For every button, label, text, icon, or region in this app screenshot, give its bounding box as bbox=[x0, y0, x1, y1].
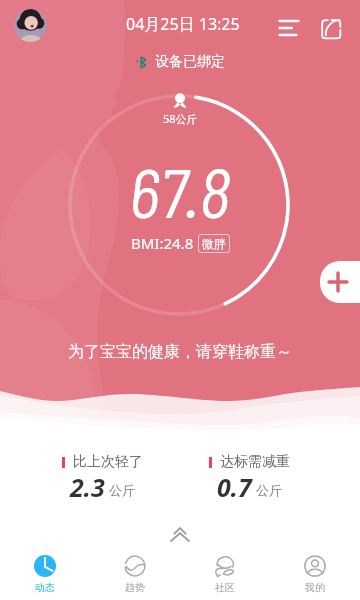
button[interactable]: Menu bbox=[275, 14, 303, 42]
staticText: 2.3 bbox=[70, 470, 105, 504]
staticText: BMI:24.8 bbox=[131, 233, 194, 253]
button[interactable]: Add weight record bbox=[320, 261, 360, 303]
button[interactable]: Expand bbox=[166, 522, 194, 550]
staticText: 设备已绑定 bbox=[155, 53, 225, 71]
staticText: 社区 bbox=[215, 581, 235, 594]
staticText: 0.7 bbox=[217, 470, 252, 504]
staticText: 04月25日 13:25 bbox=[126, 13, 240, 35]
button[interactable]: 社区 bbox=[180, 548, 270, 600]
button[interactable]: 达标需减重 bbox=[209, 453, 290, 505]
staticText: 达标需减重 bbox=[220, 453, 290, 471]
staticText: 比上次轻了 bbox=[73, 453, 143, 471]
staticText: 动态 bbox=[35, 581, 55, 594]
staticText: 67.8 bbox=[129, 150, 231, 232]
button[interactable]: 趋势 bbox=[90, 548, 180, 600]
button[interactable]: Profile bbox=[14, 9, 47, 42]
staticText: 公斤 bbox=[109, 482, 135, 498]
staticText: 公斤 bbox=[256, 482, 282, 498]
button[interactable]: 动态 bbox=[0, 548, 90, 600]
button[interactable]: 我的 bbox=[270, 548, 360, 600]
staticText: 为了宝宝的健康，请穿鞋称重～ bbox=[68, 342, 292, 362]
staticText: 我的 bbox=[305, 581, 325, 594]
staticText: 微胖 bbox=[202, 236, 226, 251]
staticText: 58公斤 bbox=[163, 111, 198, 126]
button[interactable]: Share bbox=[318, 16, 344, 42]
staticText: 趋势 bbox=[125, 581, 145, 594]
button[interactable]: 比上次轻了 bbox=[62, 453, 143, 505]
